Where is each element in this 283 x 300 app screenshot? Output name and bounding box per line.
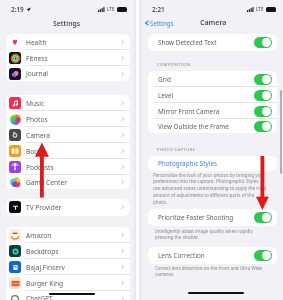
staticText: LTE xyxy=(107,6,115,12)
button[interactable]: Bajaj Finserv xyxy=(6,259,130,275)
button[interactable]: TV Provider xyxy=(6,199,130,215)
staticText: Settings xyxy=(150,19,174,27)
staticText: Lens Correction xyxy=(158,251,205,260)
button[interactable]: Music xyxy=(6,95,130,111)
button[interactable]: View Outside the Frame xyxy=(158,119,272,133)
staticText: Podcasts xyxy=(26,163,54,172)
staticText: 2:19 xyxy=(11,5,24,14)
button[interactable]: Photographic Styles xyxy=(158,156,271,171)
staticText: Camera xyxy=(26,131,51,140)
button[interactable]: Podcasts xyxy=(6,159,130,175)
staticText: PHOTO CAPTURE xyxy=(157,146,196,152)
staticText: Journal xyxy=(26,69,49,78)
button[interactable]: Health xyxy=(6,34,130,50)
button[interactable]: Photos xyxy=(6,111,130,127)
staticText: 2:21 xyxy=(152,5,165,14)
button[interactable]: Prioritize Faster Shooting xyxy=(158,209,272,225)
staticText: Mirror Front Camera xyxy=(158,107,220,116)
staticText: Bajaj Finserv xyxy=(26,263,65,272)
button[interactable]: Backdrops xyxy=(6,243,130,259)
staticText: View Outside the Frame xyxy=(158,122,229,131)
staticText: Amazon xyxy=(26,231,52,240)
staticText: Level xyxy=(158,91,174,100)
staticText: TV Provider xyxy=(26,203,62,212)
button[interactable]: Lens Correction xyxy=(158,247,272,263)
button[interactable]: Grid xyxy=(158,71,272,87)
staticText: Photographic Styles xyxy=(158,159,218,168)
staticText: Grid xyxy=(158,75,171,84)
staticText: Camera xyxy=(200,18,227,28)
staticText: Prioritize Faster Shooting xyxy=(158,213,234,222)
button[interactable]: Books xyxy=(6,143,130,159)
button[interactable]: Camera xyxy=(6,127,130,143)
button[interactable]: Back to Settings xyxy=(145,19,174,27)
staticText: LTE xyxy=(256,6,264,12)
button[interactable]: Fitness xyxy=(6,50,130,66)
staticText: Settings xyxy=(53,19,81,28)
staticText: Intelligently adapt image quality when r… xyxy=(155,228,272,241)
staticText: ChatGPT xyxy=(26,294,53,300)
staticText: Correct lens distortion on the front and… xyxy=(155,265,272,278)
staticText: Show Detected Text xyxy=(158,38,217,47)
button[interactable]: Mirror Front Camera xyxy=(158,103,272,119)
staticText: Health xyxy=(26,38,47,47)
staticText: Books xyxy=(26,147,45,156)
button[interactable]: Journal xyxy=(6,66,130,81)
staticText: Fitness xyxy=(26,54,48,63)
staticText: Burger King xyxy=(26,279,64,288)
button[interactable]: Show Detected Text xyxy=(158,34,272,50)
button[interactable]: Amazon xyxy=(6,227,130,243)
button[interactable]: Burger King xyxy=(6,275,130,291)
staticText: Game Center xyxy=(26,178,67,187)
staticText: Photos xyxy=(26,115,48,124)
staticText: Backdrops xyxy=(26,247,59,256)
staticText: Music xyxy=(26,99,45,108)
button[interactable]: Game Center xyxy=(6,175,130,189)
staticText: Personalize the look of your photos by b… xyxy=(153,172,267,206)
staticText: COMPOSITION xyxy=(157,61,191,67)
button[interactable]: ChatGPT xyxy=(6,291,130,300)
button[interactable]: Level xyxy=(158,87,272,103)
